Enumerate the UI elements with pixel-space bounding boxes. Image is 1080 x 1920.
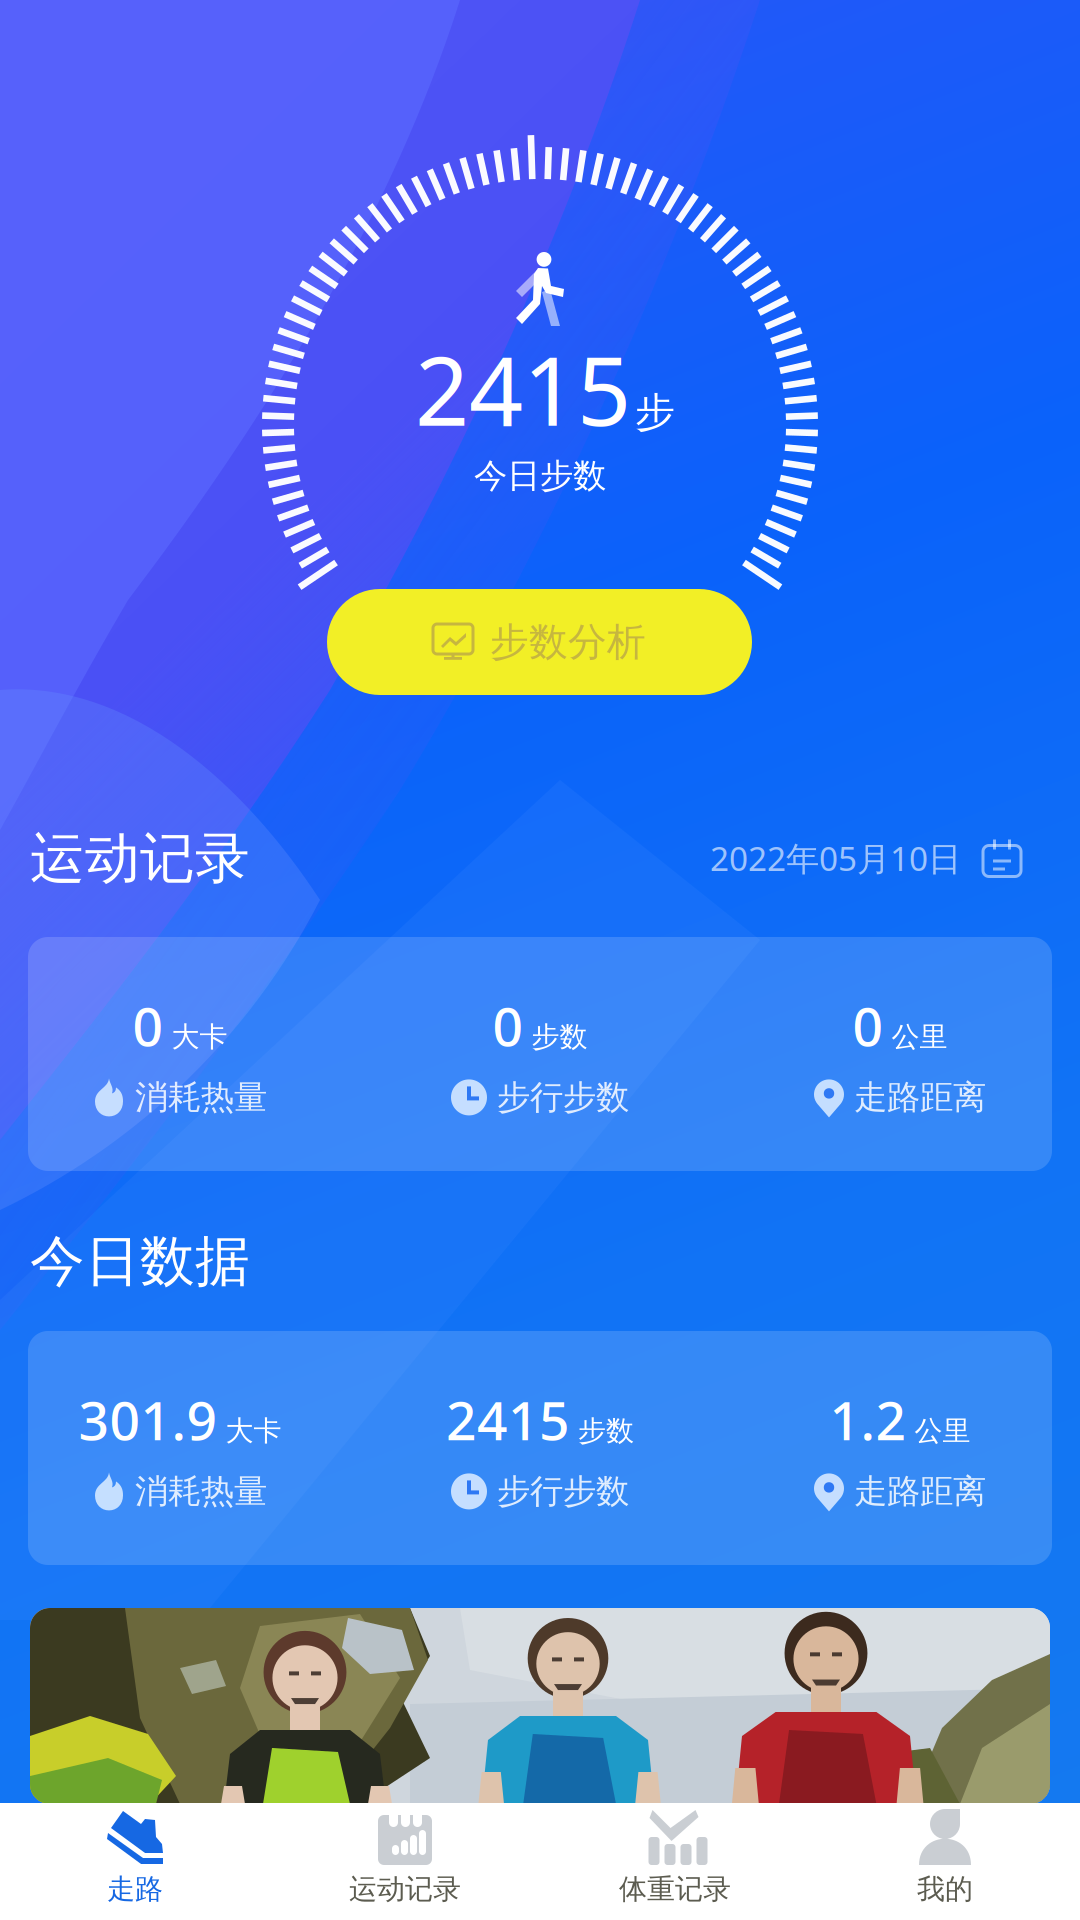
staticText: 走路 <box>107 1872 163 1906</box>
staticText: 步 <box>635 388 675 437</box>
staticText: 步行步数 <box>497 1471 629 1512</box>
button[interactable]: 步数分析 <box>327 589 752 695</box>
staticText: 大卡 <box>225 1414 281 1448</box>
button[interactable]: 我的 <box>810 1803 1080 1920</box>
staticText: 走路距离 <box>854 1077 986 1118</box>
staticText: 公里 <box>891 1020 947 1054</box>
staticText: 大卡 <box>171 1020 227 1054</box>
staticText: 走路距离 <box>854 1471 986 1512</box>
button[interactable]: 2022年05月10日 <box>710 830 1021 886</box>
staticText: 运动记录 <box>30 825 250 892</box>
staticText: 步数 <box>531 1020 587 1054</box>
staticText: 0 <box>492 990 523 1061</box>
staticText: 今日数据 <box>30 1228 250 1295</box>
button[interactable]: 运动记录 <box>270 1803 540 1920</box>
staticText: 公里 <box>914 1414 970 1448</box>
staticText: 2415 <box>415 326 631 452</box>
staticText: 运动记录 <box>349 1872 461 1906</box>
staticText: 0 <box>852 990 883 1061</box>
staticText: 2415 <box>446 1384 570 1455</box>
staticText: 步数 <box>578 1414 634 1448</box>
staticText: 我的 <box>917 1872 973 1906</box>
staticText: 今日步数 <box>474 455 606 496</box>
staticText: 体重记录 <box>619 1872 731 1906</box>
staticText: 301.9 <box>78 1384 217 1455</box>
staticText: 步数分析 <box>490 618 646 666</box>
button[interactable]: 走路 <box>0 1803 270 1920</box>
staticText: 0 <box>132 990 163 1061</box>
staticText: 1.2 <box>829 1384 906 1455</box>
staticText: 2022年05月10日 <box>710 836 961 880</box>
staticText: 消耗热量 <box>135 1471 267 1512</box>
button[interactable]: 体重记录 <box>540 1803 810 1920</box>
staticText: 步行步数 <box>497 1077 629 1118</box>
staticText: 消耗热量 <box>135 1077 267 1118</box>
